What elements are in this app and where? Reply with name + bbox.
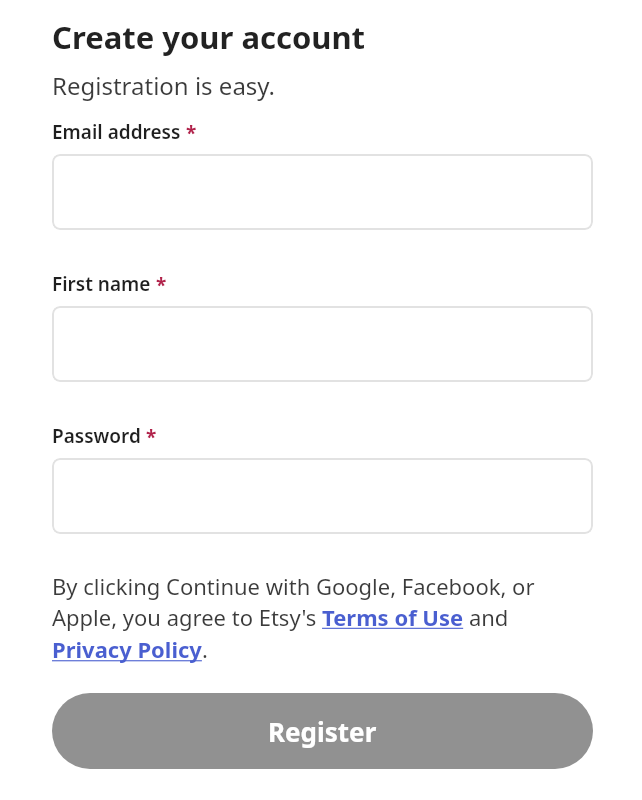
staticText: Registration is easy. (52, 69, 276, 102)
staticText: Register (268, 714, 377, 749)
staticText: Email address (52, 119, 181, 145)
staticText: * (156, 272, 167, 298)
staticText: Create your account (52, 16, 366, 58)
staticText: First name (52, 271, 151, 297)
staticText: Password (52, 423, 141, 449)
button[interactable] (52, 458, 593, 534)
staticText: By clicking Continue with Google, Facebo… (52, 571, 593, 665)
button[interactable] (52, 154, 593, 230)
staticText: * (146, 424, 157, 450)
button[interactable] (52, 306, 593, 382)
staticText: * (186, 120, 197, 146)
button[interactable]: Register (52, 693, 593, 769)
